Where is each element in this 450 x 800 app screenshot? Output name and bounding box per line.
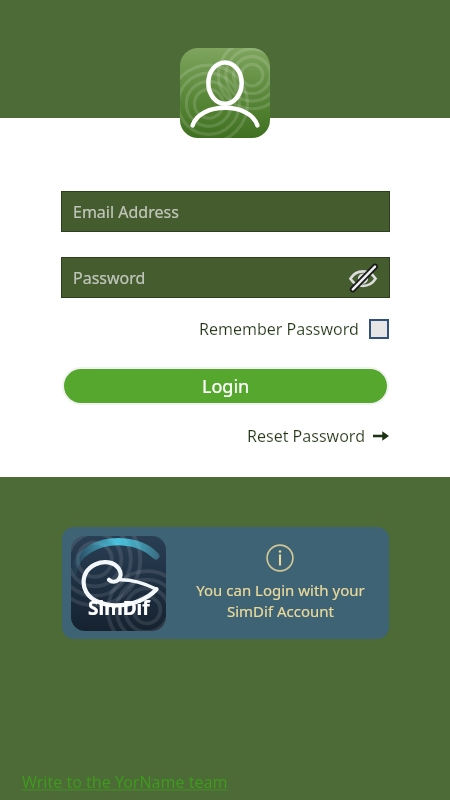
button[interactable]: Write to the YorName team [22,771,228,793]
button[interactable]: Reset Password [0,425,389,447]
button[interactable]: App logo [180,48,270,138]
staticText: Email Address [73,201,179,223]
staticText: Login [202,374,250,399]
staticText: Write to the YorName team [22,771,228,793]
staticText: Password [73,267,146,289]
button[interactable]: Password [61,257,390,298]
staticText: Reset Password [247,425,365,447]
staticText: You can Login with your SimDif Account [196,580,365,622]
staticText: Remember Password [199,318,359,340]
button[interactable]: Email Address [61,191,390,232]
button[interactable]: SimDif [62,527,389,639]
staticText: SimDif [88,595,150,621]
button[interactable]: Login [64,369,387,403]
button[interactable]: Remember Password [0,318,389,340]
button[interactable]: Show password [346,261,380,295]
